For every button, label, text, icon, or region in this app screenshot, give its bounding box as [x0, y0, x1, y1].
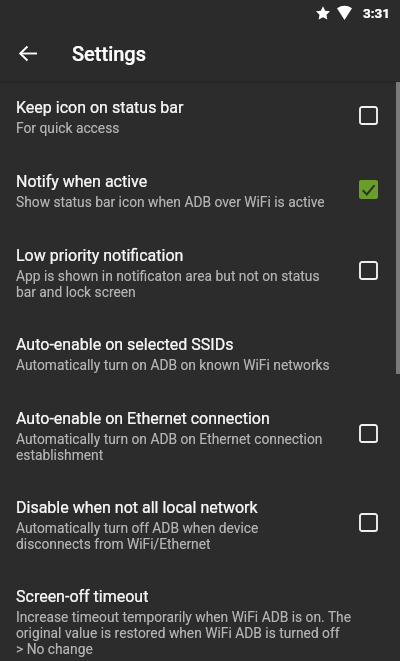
button[interactable]: Auto-enable on Ethernet connection: [345, 389, 391, 478]
staticText: Settings: [72, 42, 147, 65]
button[interactable]: Keep icon on status bar: [345, 78, 391, 152]
button[interactable]: Auto-enable on selected SSIDs: [0, 318, 400, 392]
staticText: For quick access: [16, 120, 120, 136]
button[interactable]: Low priority notification: [0, 229, 400, 318]
button[interactable]: Back: [0, 26, 55, 81]
staticText: Show status bar icon when ADB over WiFi …: [16, 194, 325, 210]
staticText: Keep icon on status bar: [16, 98, 184, 117]
staticText: Increase timeout temporarily when WiFi A…: [16, 609, 352, 625]
button[interactable]: Keep icon on status bar: [0, 81, 400, 155]
staticText: Auto-enable on Ethernet connection: [16, 409, 270, 428]
staticText: bar and lock screen: [16, 284, 136, 300]
staticText: App is shown in notificaton area but not…: [16, 268, 320, 284]
staticText: Disable when not all local network: [16, 498, 258, 517]
staticText: Screen-off timeout: [16, 587, 149, 606]
staticText: Notify when active: [16, 172, 148, 191]
staticText: original value is restored when WiFi ADB…: [16, 625, 340, 641]
button[interactable]: Screen-off timeout: [0, 570, 400, 661]
staticText: Auto-enable on selected SSIDs: [16, 335, 234, 354]
staticText: Automatically turn on ADB on known WiFi …: [16, 357, 330, 373]
staticText: disconnects from WiFi/Ethernet: [16, 536, 211, 552]
staticText: > No change: [16, 641, 93, 657]
button[interactable]: Disable when not all local network: [0, 481, 400, 570]
button[interactable]: Low priority notification: [345, 226, 391, 315]
button[interactable]: Disable when not all local network: [345, 478, 391, 567]
button[interactable]: Notify when active: [0, 155, 400, 229]
staticText: establishment: [16, 447, 104, 463]
button[interactable]: Notify when active: [345, 152, 391, 226]
staticText: Automatically turn off ADB when device: [16, 520, 259, 536]
staticText: Automatically turn on ADB on Ethernet co…: [16, 431, 323, 447]
staticText: 3:31: [363, 5, 391, 21]
staticText: Low priority notification: [16, 246, 184, 265]
button[interactable]: Auto-enable on Ethernet connection: [0, 392, 400, 481]
